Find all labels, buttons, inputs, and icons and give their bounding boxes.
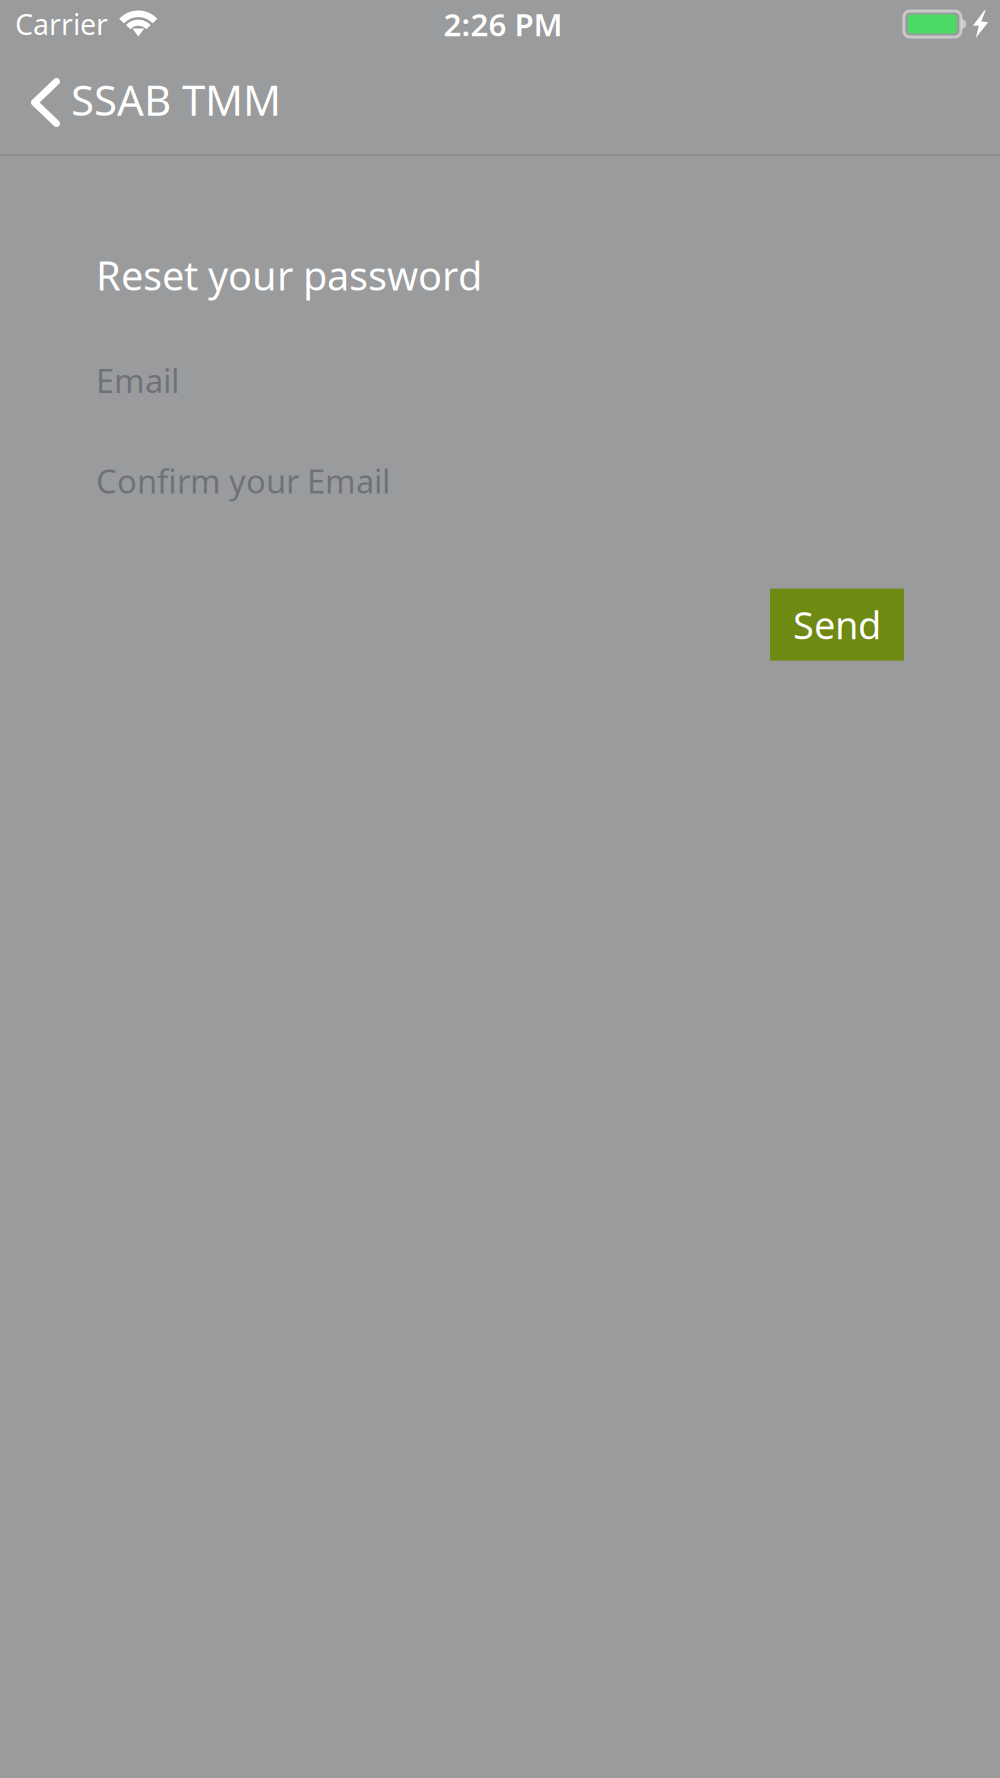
staticText: Send <box>793 599 881 650</box>
staticText: Confirm your Email <box>96 459 390 503</box>
staticText: Reset your password <box>96 248 482 302</box>
staticText: Carrier <box>15 4 108 43</box>
staticText: Email <box>96 358 179 403</box>
staticText: SSAB TMM <box>71 71 281 128</box>
button[interactable]: Send <box>770 589 904 661</box>
staticText: 2:26 PM <box>443 3 562 45</box>
button[interactable]: Email <box>96 358 904 403</box>
button[interactable]: Confirm your Email <box>96 459 904 503</box>
button[interactable]: Back to SSAB TMM <box>0 49 305 152</box>
